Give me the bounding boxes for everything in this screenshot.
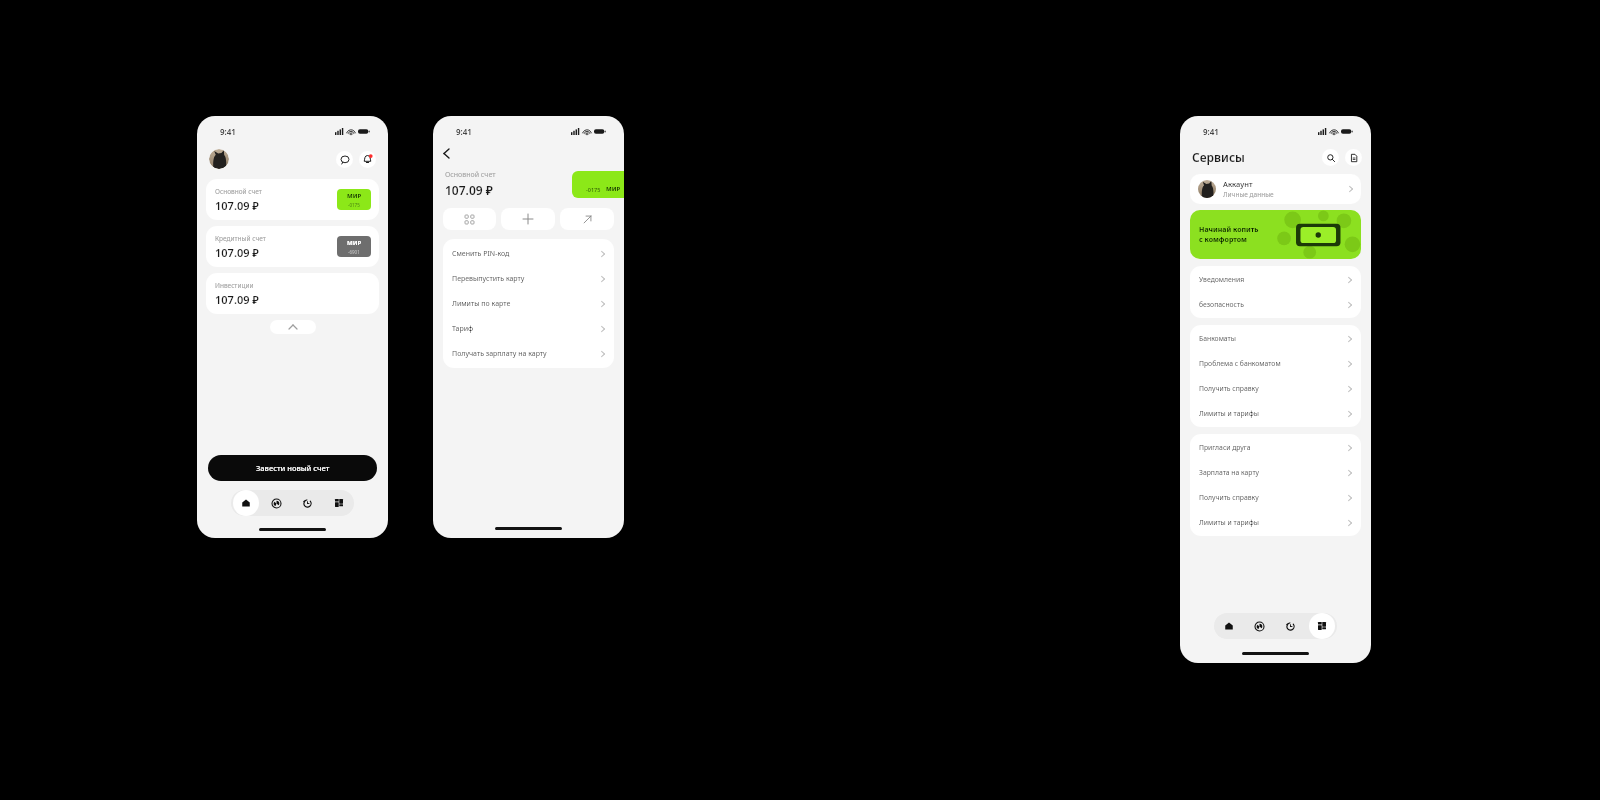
staticText: Кредитный счет — [215, 234, 266, 243]
staticText: Основной счет — [215, 187, 262, 196]
staticText: с комфортом — [1199, 235, 1247, 245]
button[interactable]: Аккаунт — [1190, 174, 1361, 204]
staticText: 107.09 ₽ — [215, 292, 259, 307]
button[interactable]: Тариф — [443, 316, 614, 341]
staticText: -6901 — [348, 249, 360, 255]
button[interactable]: Завести новый счет — [208, 455, 377, 481]
button[interactable]: Проблема с банкоматом — [1190, 351, 1361, 376]
staticText: Тариф — [452, 324, 474, 334]
staticText: 9:41 — [456, 126, 472, 137]
staticText: Уведомления — [1199, 275, 1245, 284]
staticText: МИР — [606, 185, 621, 193]
button[interactable]: Уведомления — [1190, 267, 1361, 292]
button[interactable]: Кредитный счет — [206, 226, 379, 267]
button[interactable]: Начинай копить — [1190, 210, 1361, 259]
button[interactable]: Пригласи друга — [1190, 435, 1361, 460]
button[interactable]: History — [292, 490, 323, 516]
staticText: 107.09 ₽ — [445, 182, 493, 198]
staticText: Проблема с банкоматом — [1199, 359, 1281, 368]
button[interactable]: Лимиты и тарифы — [1190, 401, 1361, 426]
button[interactable]: History — [1275, 613, 1306, 639]
button[interactable]: Получать зарплату на карту — [443, 341, 614, 366]
staticText: безопасность — [1199, 300, 1244, 309]
staticText: Сервисы — [1192, 149, 1245, 165]
button[interactable]: Search — [1322, 149, 1339, 166]
button[interactable]: Analytics — [261, 490, 292, 516]
staticText: 9:41 — [1203, 126, 1219, 137]
staticText: МИР — [347, 239, 362, 247]
staticText: Получить справку — [1199, 493, 1259, 502]
staticText: Лимиты по карте — [452, 299, 511, 309]
button[interactable]: Profile — [209, 149, 229, 169]
staticText: Банкоматы — [1199, 334, 1236, 343]
staticText: Завести новый счет — [256, 463, 330, 473]
button[interactable]: Сменить PIN-код — [443, 241, 614, 266]
button[interactable]: безопасность — [1190, 292, 1361, 317]
staticText: 107.09 ₽ — [215, 198, 259, 213]
button[interactable]: Зарплата на карту — [1190, 460, 1361, 485]
staticText: Зарплата на карту — [1199, 468, 1260, 477]
staticText: Получить справку — [1199, 384, 1259, 393]
button[interactable]: Перевыпустить карту — [443, 266, 614, 291]
staticText: -0175 — [586, 186, 601, 193]
button[interactable]: Лимиты по карте — [443, 291, 614, 316]
button[interactable]: Получить справку — [1190, 376, 1361, 401]
button[interactable]: -0175 — [572, 171, 624, 198]
staticText: Основной счет — [445, 170, 496, 180]
button[interactable]: Services — [323, 490, 354, 516]
button[interactable]: Получить справку — [1190, 485, 1361, 510]
button[interactable]: Notifications — [359, 151, 376, 168]
button[interactable]: Services — [1306, 613, 1337, 639]
staticText: Аккаунт — [1223, 179, 1253, 189]
staticText: Инвестиции — [215, 281, 254, 290]
button[interactable]: Documents — [1345, 149, 1362, 166]
button[interactable]: Add — [501, 208, 555, 230]
staticText: Сменить PIN-код — [452, 249, 510, 259]
staticText: 9:41 — [220, 126, 236, 137]
button[interactable]: Analytics — [1244, 613, 1275, 639]
button[interactable]: QR code — [443, 208, 496, 230]
staticText: Начинай копить — [1199, 225, 1259, 235]
staticText: Лимиты и тарифы — [1199, 409, 1259, 418]
button[interactable]: Инвестиции — [206, 273, 379, 314]
staticText: Получать зарплату на карту — [452, 349, 547, 359]
staticText: Перевыпустить карту — [452, 274, 525, 284]
button[interactable]: Collapse — [270, 320, 316, 334]
staticText: Лимиты и тарифы — [1199, 518, 1259, 527]
staticText: Личные данные — [1223, 190, 1274, 199]
button[interactable]: Back — [444, 145, 460, 161]
button[interactable]: Лимиты и тарифы — [1190, 510, 1361, 535]
staticText: МИР — [347, 192, 362, 200]
button[interactable]: Chat — [336, 151, 353, 168]
button[interactable]: Home — [1214, 613, 1244, 639]
button[interactable]: Основной счет — [206, 179, 379, 220]
staticText: -0175 — [348, 202, 360, 208]
staticText: Пригласи друга — [1199, 443, 1251, 452]
button[interactable]: Transfer — [560, 208, 614, 230]
button[interactable]: Home — [231, 490, 261, 516]
button[interactable]: Банкоматы — [1190, 326, 1361, 351]
staticText: 107.09 ₽ — [215, 245, 259, 260]
